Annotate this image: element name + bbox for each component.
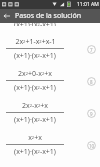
staticText: (x+1)·(x2-x+1) bbox=[14, 51, 56, 61]
staticText: 7 bbox=[90, 47, 93, 53]
button[interactable]: 2x2+0-x2+x bbox=[0, 69, 100, 93]
staticText: (x+1)·(x2-x+1) bbox=[14, 147, 56, 157]
staticText: x2+x bbox=[28, 133, 42, 143]
staticText: (x+1)·(x2-x+1) bbox=[14, 83, 56, 93]
button[interactable]: Paso 10 bbox=[87, 141, 96, 150]
button[interactable]: Paso 9 bbox=[87, 109, 96, 118]
staticText: 2x2-x2+x bbox=[22, 101, 48, 111]
button[interactable]: 2x2-x2+x bbox=[0, 101, 100, 125]
staticText: 11:01 AM bbox=[77, 1, 99, 8]
staticText: 10 bbox=[89, 143, 95, 149]
staticText: (x+1)·(x2-x+1) bbox=[14, 23, 56, 26]
staticText: 8 bbox=[90, 79, 93, 85]
staticText: 9 bbox=[90, 111, 93, 117]
staticText: (x+1)·(x2-x+1) bbox=[14, 115, 56, 125]
button[interactable]: 2x2+1-x2+x-1 bbox=[0, 37, 100, 61]
button[interactable]: x2+x bbox=[0, 133, 100, 157]
staticText: 2x2+0-x2+x bbox=[18, 69, 52, 79]
button[interactable]: Paso 8 bbox=[87, 77, 96, 86]
button[interactable]: Paso 7 bbox=[87, 45, 96, 54]
button[interactable]: Back bbox=[0, 9, 14, 23]
staticText: 2x2+1-x2+x-1 bbox=[15, 37, 56, 47]
staticText: Pasos de la solución bbox=[15, 11, 81, 21]
